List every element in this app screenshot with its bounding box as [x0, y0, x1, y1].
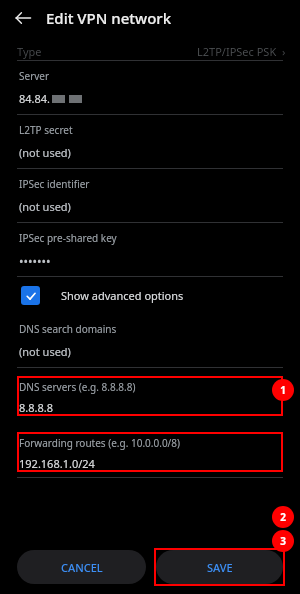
staticText: Type: [17, 44, 42, 59]
staticText: 84.84.: [19, 91, 51, 106]
staticText: (not used): [19, 344, 71, 359]
button[interactable]: L2TP secret: [19, 115, 283, 168]
button[interactable]: Back: [8, 3, 38, 33]
staticText: DNS servers (e.g. 8.8.8.8): [19, 380, 136, 394]
staticText: SAVE: [207, 560, 233, 575]
button[interactable]: Type: [17, 36, 286, 59]
button[interactable]: Show advanced options: [21, 277, 300, 314]
button[interactable]: DNS servers (e.g. 8.8.8.8): [17, 376, 283, 416]
staticText: Server: [19, 69, 50, 83]
button[interactable]: SAVE: [156, 550, 283, 584]
staticText: CANCEL: [61, 560, 103, 575]
staticText: 1: [280, 383, 286, 397]
staticText: Forwarding routes (e.g. 10.0.0.0/8): [19, 436, 181, 450]
staticText: •••••••: [19, 253, 51, 269]
button[interactable]: IPSec pre-shared key: [19, 223, 283, 276]
staticText: Show advanced options: [61, 288, 184, 303]
staticText: L2TP/IPSec PSK ›: [197, 44, 286, 59]
staticText: DNS search domains: [19, 322, 117, 336]
staticText: 2: [280, 510, 286, 524]
button[interactable]: Forwarding routes (e.g. 10.0.0.0/8): [17, 432, 283, 472]
button[interactable]: DNS search domains: [19, 314, 283, 367]
button[interactable]: Server: [19, 61, 283, 114]
staticText: 8.8.8.8: [19, 400, 54, 415]
staticText: Edit VPN network: [46, 8, 172, 28]
staticText: IPSec identifier: [19, 177, 90, 191]
staticText: IPSec pre-shared key: [19, 231, 117, 245]
button[interactable]: CANCEL: [17, 550, 146, 584]
staticText: 192.168.1.0/24: [19, 456, 95, 471]
staticText: (not used): [19, 199, 71, 214]
staticText: 3: [280, 534, 286, 548]
staticText: L2TP secret: [19, 123, 73, 137]
button[interactable]: IPSec identifier: [19, 169, 283, 222]
staticText: (not used): [19, 145, 71, 160]
